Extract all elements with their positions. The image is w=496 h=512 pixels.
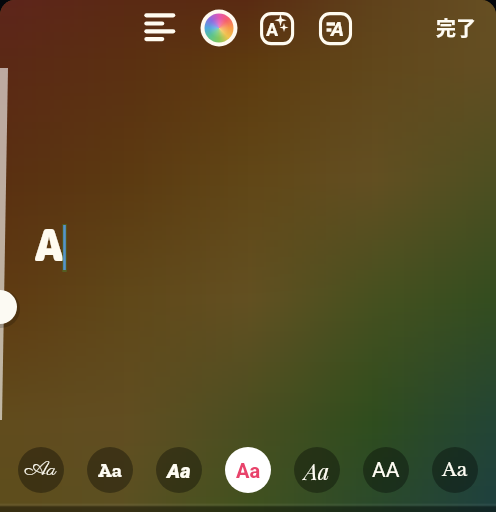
button[interactable]: Text size — [0, 60, 16, 430]
button[interactable]: Aa — [18, 447, 64, 493]
button[interactable]: Aa — [156, 447, 202, 493]
staticText: Aa — [98, 458, 122, 482]
button[interactable]: Text alignment — [138, 6, 180, 48]
button[interactable]: Magic text — [256, 8, 296, 48]
button[interactable]: AA — [363, 447, 409, 493]
staticText: A — [34, 214, 64, 275]
button[interactable]: Aa — [432, 447, 478, 493]
staticText: Aa — [236, 459, 261, 482]
staticText: A — [331, 17, 345, 40]
button[interactable]: Aa — [294, 447, 340, 493]
staticText: AA — [372, 458, 400, 483]
staticText: Aa — [25, 457, 57, 484]
button[interactable]: Aa — [87, 447, 133, 493]
button[interactable]: 完了 — [428, 6, 484, 49]
staticText: Aa — [304, 456, 330, 485]
button[interactable]: Text style — [314, 8, 354, 48]
staticText: A — [266, 19, 279, 40]
button[interactable]: Text colour — [200, 9, 238, 47]
staticText: Aa — [442, 458, 468, 482]
staticText: Aa — [167, 459, 191, 482]
staticText: 完了 — [436, 13, 476, 42]
button[interactable]: Aa — [225, 447, 271, 493]
